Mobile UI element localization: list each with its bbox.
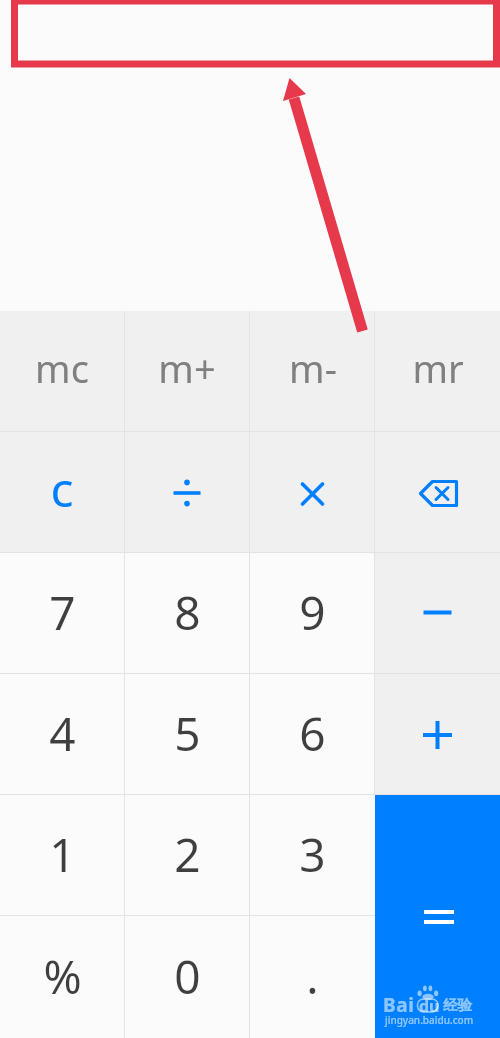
staticText: 1: [49, 823, 76, 886]
button[interactable]: 2: [124, 795, 250, 916]
staticText: 9: [299, 581, 326, 644]
staticText: 5: [174, 702, 201, 765]
button[interactable]: mc: [0, 311, 124, 432]
button[interactable]: 1: [0, 795, 124, 916]
button[interactable]: c: [0, 432, 124, 553]
staticText: du: [419, 995, 440, 1017]
staticText: 经验: [443, 996, 472, 1014]
staticText: .: [306, 945, 319, 1008]
staticText: jingyan.baidu.com: [385, 1013, 474, 1027]
button[interactable]: 8: [124, 553, 250, 674]
button[interactable]: 4: [0, 674, 124, 795]
button[interactable]: %: [0, 916, 124, 1038]
staticText: 4: [49, 702, 76, 765]
staticText: c: [50, 456, 74, 521]
button[interactable]: 0: [124, 916, 250, 1038]
staticText: Bai: [383, 992, 415, 1018]
button[interactable]: Divide: [124, 432, 250, 553]
staticText: mr: [412, 342, 464, 394]
staticText: 3: [299, 823, 326, 886]
button[interactable]: 9: [250, 553, 375, 674]
button[interactable]: 6: [250, 674, 375, 795]
staticText: m+: [158, 342, 216, 394]
button[interactable]: Multiply: [250, 432, 375, 553]
button[interactable]: 5: [124, 674, 250, 795]
staticText: %: [43, 945, 82, 1008]
button[interactable]: Minus: [375, 553, 500, 674]
button[interactable]: m+: [124, 311, 250, 432]
button[interactable]: Backspace: [375, 432, 500, 553]
staticText: 6: [299, 702, 326, 765]
button[interactable]: Equals: [375, 795, 500, 1038]
staticText: 2: [174, 823, 201, 886]
staticText: 0: [174, 945, 201, 1008]
staticText: 7: [49, 581, 76, 644]
staticText: mc: [35, 342, 89, 394]
button[interactable]: 7: [0, 553, 124, 674]
staticText: m-: [289, 342, 337, 394]
staticText: 8: [174, 581, 201, 644]
button[interactable]: 3: [250, 795, 375, 916]
button[interactable]: m-: [250, 311, 375, 432]
button[interactable]: .: [250, 916, 375, 1038]
button[interactable]: Plus: [375, 674, 500, 795]
button[interactable]: mr: [375, 311, 500, 432]
